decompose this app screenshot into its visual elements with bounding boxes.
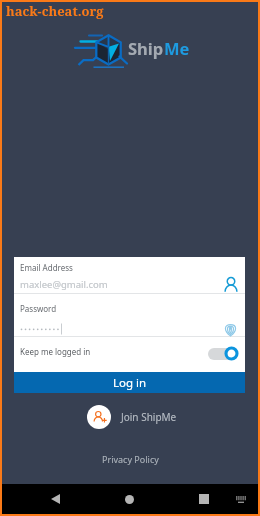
staticText: Log in [113,375,147,391]
staticText: Email Address [20,262,73,273]
staticText: Join ShipMe [121,410,177,424]
button[interactable]: Back [42,484,68,514]
button[interactable]: Privacy Policy [102,453,159,465]
staticText: Ship [128,37,164,59]
button[interactable]: Home [116,484,142,514]
other: Choose contact [223,276,239,292]
button[interactable]: Recent apps [191,484,217,514]
staticText: Password [20,303,57,314]
staticText: Privacy Policy [102,453,159,465]
staticText: hack-cheat.org [6,2,104,20]
staticText: Keep me logged in [20,346,91,357]
button[interactable]: Change keyboard [228,484,254,514]
button[interactable]: Keep me logged in [208,346,239,361]
staticText: Me [164,37,190,59]
staticText: maxlee@gmail.com [20,278,108,291]
button[interactable]: Log in [14,372,245,393]
button[interactable]: Join ShipMe [87,405,177,429]
other: Use fingerprint [225,322,236,336]
